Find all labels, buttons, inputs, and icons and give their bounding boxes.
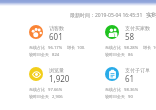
staticText: 61: [125, 73, 135, 84]
other: Page views: [29, 67, 43, 81]
staticText: 访客数: [49, 25, 64, 31]
staticText: 较昨日全天: [29, 94, 49, 99]
staticText: 无线占比: [29, 87, 45, 92]
staticText: 1,920: [49, 73, 70, 84]
staticText: 601: [49, 31, 63, 42]
staticText: 2,906: [52, 94, 63, 100]
staticText: 97.66%: [48, 87, 63, 93]
staticText: 100+: [77, 45, 85, 51]
staticText: 98.36%: [124, 87, 139, 93]
staticText: 58: [125, 31, 135, 42]
staticText: 无线占比: [29, 45, 45, 50]
button[interactable]: Paid sub orders: [105, 67, 156, 99]
staticText: 较昨日全天: [105, 52, 125, 57]
staticText: 最新时间：2019-05-04 16:45:31: [70, 12, 143, 19]
staticText: 96.17%: [48, 45, 63, 51]
staticText: 较昨日全天: [29, 52, 49, 57]
other: Paying buyers: [105, 25, 119, 39]
staticText: 98.28%: [124, 45, 139, 51]
button[interactable]: Page views: [29, 67, 85, 99]
staticText: 无线占比: [105, 45, 121, 50]
staticText: 10+: [153, 45, 156, 51]
staticText: 增长: [67, 45, 75, 50]
staticText: 824: [52, 52, 60, 58]
button[interactable]: Visitors: [29, 25, 85, 57]
staticText: 86: [128, 52, 133, 58]
staticText: 支付子订单: [125, 67, 150, 73]
staticText: 增长: [143, 45, 151, 50]
staticText: 浏览量: [49, 67, 64, 73]
staticText: 90: [128, 94, 133, 100]
other: Visitors: [29, 25, 43, 39]
button[interactable]: Paying buyers: [105, 25, 156, 57]
button[interactable]: 实时: [146, 11, 156, 19]
staticText: 实时: [146, 11, 156, 19]
staticText: 较昨日全天: [105, 94, 125, 99]
other: Paid sub orders: [105, 67, 119, 81]
staticText: 支付买家数: [125, 25, 150, 31]
staticText: 无线占比: [105, 87, 121, 92]
